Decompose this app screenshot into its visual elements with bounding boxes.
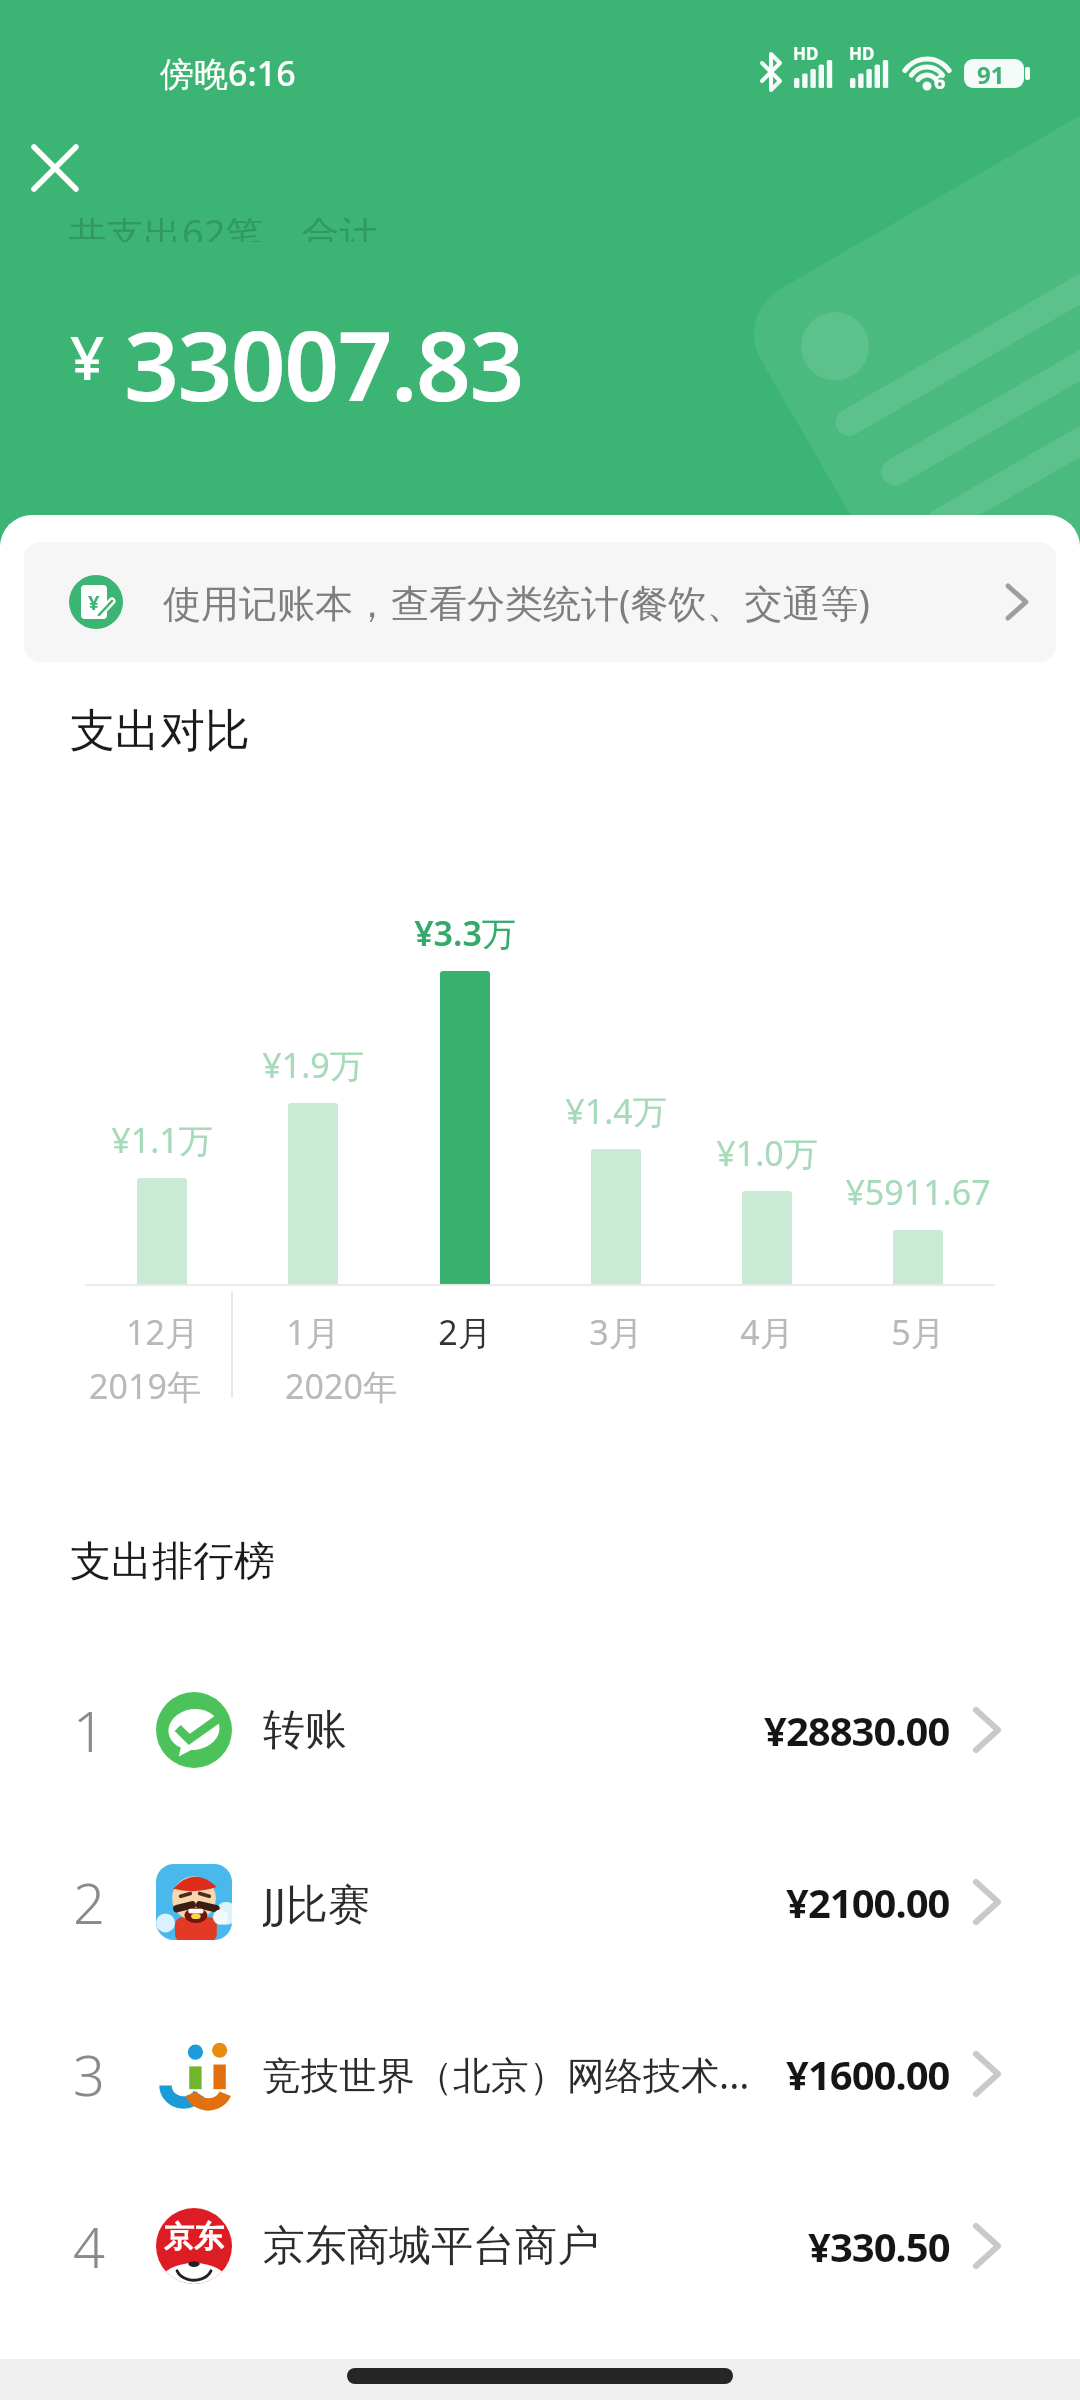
staticText: 共支出62笔，合计 (68, 218, 378, 242)
staticText: 1月 (286, 1309, 340, 1355)
staticText: ¥1.0万 (716, 1130, 818, 1176)
staticText: JJ比赛 (263, 1874, 370, 1931)
staticText: 3月 (589, 1309, 643, 1355)
staticText: 2月 (438, 1309, 492, 1355)
staticText: 33007.83 (124, 298, 523, 429)
button[interactable]: ¥ (24, 542, 1056, 662)
staticText: ¥28830.00 (764, 1703, 950, 1757)
button[interactable]: 4 (0, 2160, 1080, 2332)
staticText: 竞技世界（北京）网络技术... (263, 2048, 750, 2100)
staticText: 2020年 (285, 1363, 397, 1409)
staticText: HD (849, 42, 875, 65)
staticText: 使用记账本，查看分类统计(餐饮、交通等) (163, 576, 870, 628)
staticText: ¥1.4万 (565, 1088, 667, 1134)
staticText: 4 (73, 2208, 105, 2284)
staticText: 1 (73, 1692, 105, 1768)
staticText: 4月 (740, 1309, 794, 1355)
staticText: 5月 (891, 1309, 945, 1355)
staticText: HD (793, 42, 819, 65)
staticText: ¥1.1万 (111, 1117, 213, 1163)
staticText: 6 (934, 68, 946, 95)
staticText: 12月 (126, 1309, 199, 1355)
staticText: 2 (73, 1864, 105, 1940)
button[interactable]: 3 (0, 1988, 1080, 2160)
staticText: ¥1600.00 (786, 2047, 950, 2101)
staticText: ¥ (88, 589, 100, 616)
staticText: 京东商城平台商户 (263, 2220, 599, 2273)
staticText: ¥3.3万 (414, 910, 516, 956)
staticText: 京东 (164, 2218, 224, 2256)
button[interactable]: 2 (0, 1816, 1080, 1988)
staticText: ¥2100.00 (786, 1875, 950, 1929)
staticText: 2019年 (89, 1363, 201, 1409)
staticText: ¥1.9万 (262, 1042, 364, 1088)
button[interactable]: 1 (0, 1644, 1080, 1816)
staticText: 91 (977, 58, 1005, 91)
staticText: ¥5911.67 (845, 1169, 991, 1215)
staticText: ¥330.50 (808, 2219, 950, 2273)
staticText: ¥ (70, 316, 105, 398)
staticText: 3 (73, 2036, 105, 2112)
staticText: 支出对比 (70, 703, 250, 760)
staticText: 支出排行榜 (70, 1536, 275, 1588)
staticText: 转账 (263, 1704, 347, 1757)
staticText: 傍晚6:16 (160, 50, 296, 96)
button[interactable] (13, 126, 97, 210)
